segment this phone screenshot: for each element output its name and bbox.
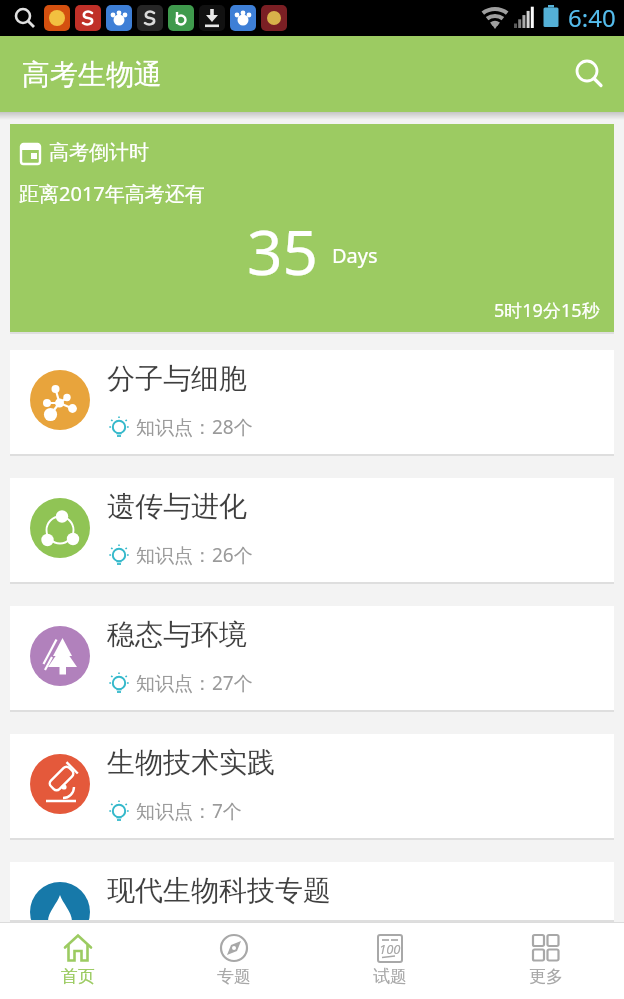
staticText: 距离2017年高考还有 bbox=[19, 180, 205, 207]
button[interactable]: 分子与细胞 bbox=[10, 350, 614, 456]
staticText: 高考倒计时 bbox=[49, 140, 149, 165]
button[interactable]: 高考倒计时 bbox=[10, 124, 614, 332]
button[interactable]: 生物技术实践 bbox=[10, 734, 614, 840]
staticText: 6:40 bbox=[568, 1, 616, 34]
staticText: 知识点：28个 bbox=[136, 414, 253, 440]
button[interactable]: 现代生物科技专题 bbox=[10, 862, 614, 922]
staticText: 高考生物通 bbox=[22, 57, 162, 92]
staticText: 100 bbox=[379, 940, 401, 958]
staticText: 知识点：12个 bbox=[136, 926, 253, 952]
button[interactable]: 更多 bbox=[468, 923, 624, 999]
staticText: 稳态与环境 bbox=[107, 617, 247, 652]
button[interactable]: 首页 bbox=[0, 923, 156, 999]
staticText: 知识点：27个 bbox=[136, 670, 253, 696]
button[interactable]: 遗传与进化 bbox=[10, 478, 614, 584]
staticText: 生物技术实践 bbox=[107, 745, 275, 780]
staticText: 更多 bbox=[529, 966, 563, 987]
staticText: 专题 bbox=[217, 966, 251, 987]
button[interactable]: 100 bbox=[312, 923, 468, 999]
staticText: 试题 bbox=[373, 966, 407, 987]
staticText: 分子与细胞 bbox=[107, 361, 247, 396]
staticText: 知识点：7个 bbox=[136, 798, 242, 824]
staticText: Days bbox=[332, 242, 378, 269]
staticText: 现代生物科技专题 bbox=[107, 873, 331, 908]
staticText: 首页 bbox=[61, 966, 95, 987]
button[interactable]: 稳态与环境 bbox=[10, 606, 614, 712]
staticText: 5时19分15秒 bbox=[494, 298, 600, 323]
staticText: 遗传与进化 bbox=[107, 489, 247, 524]
button[interactable] bbox=[568, 54, 608, 94]
staticText: 35 bbox=[247, 209, 318, 293]
staticText: 知识点：26个 bbox=[136, 542, 253, 568]
button[interactable]: 专题 bbox=[156, 923, 312, 999]
